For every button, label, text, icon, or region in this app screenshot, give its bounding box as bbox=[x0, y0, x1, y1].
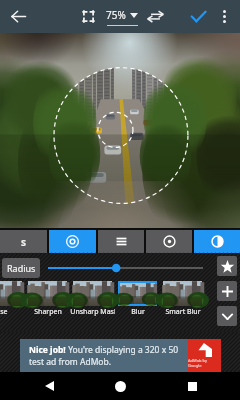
button[interactable]: Add bbox=[217, 281, 237, 301]
button[interactable]: 75% bbox=[104, 0, 140, 33]
staticText: You're displaying a 320 x 50 bbox=[66, 344, 179, 356]
staticText: S bbox=[21, 236, 26, 248]
button[interactable]: Back bbox=[0, 0, 36, 33]
staticText: Unsharp Mask bbox=[70, 307, 115, 317]
staticText: Smart Blur bbox=[165, 307, 201, 317]
staticText: ise bbox=[0, 307, 8, 317]
button[interactable]: Blur bbox=[115, 281, 160, 306]
staticText: 75% bbox=[106, 8, 126, 22]
button[interactable]: Sharpen bbox=[25, 281, 70, 306]
button[interactable]: Levels bbox=[98, 230, 144, 253]
button[interactable]: Favourite bbox=[217, 256, 237, 276]
staticText: Nice job! bbox=[29, 344, 66, 356]
button[interactable]: More options bbox=[210, 0, 238, 33]
button[interactable]: Back bbox=[26, 372, 72, 400]
staticText: Radius bbox=[7, 262, 36, 274]
button[interactable]: Smart Blur bbox=[160, 281, 205, 306]
button[interactable]: Collapse bbox=[217, 306, 237, 326]
button[interactable]: Focus bbox=[146, 230, 192, 253]
button[interactable]: Nice job! bbox=[20, 339, 221, 372]
button[interactable]: Vignette bbox=[49, 230, 96, 253]
staticText: test ad from AdMob. bbox=[29, 356, 112, 368]
staticText: Blur bbox=[131, 307, 145, 317]
button[interactable]: Contrast bbox=[194, 230, 240, 253]
button[interactable]: Radius bbox=[2, 258, 40, 278]
staticText: Sharpen bbox=[34, 307, 62, 317]
button[interactable]: Recent apps bbox=[169, 372, 215, 400]
button[interactable]: Compare before and after bbox=[141, 0, 169, 33]
button[interactable]: Home bbox=[97, 372, 143, 400]
button[interactable]: Apply bbox=[184, 0, 212, 33]
button[interactable]: S bbox=[0, 230, 47, 253]
staticText: AdMob by Google bbox=[188, 358, 221, 368]
button[interactable]: ise bbox=[0, 281, 25, 306]
button[interactable]: Fit to screen bbox=[74, 0, 102, 33]
button[interactable]: Unsharp Mask bbox=[70, 281, 115, 306]
